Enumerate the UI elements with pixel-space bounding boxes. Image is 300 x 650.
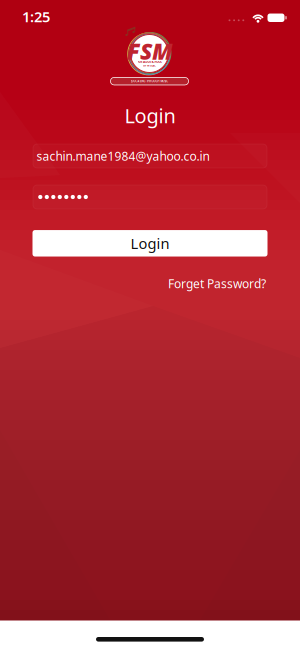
button[interactable]: Email <box>33 144 267 168</box>
staticText: sachin.mane1984@yahoo.co.in <box>36 148 209 164</box>
staticText: Login <box>124 102 175 129</box>
staticText: Forget Password? <box>168 275 266 291</box>
staticText: FSM <box>127 36 173 66</box>
staticText: EDUCATING THROUGH MUSIC <box>130 79 168 83</box>
staticText: OF MUSIC <box>143 64 156 67</box>
staticText: 1:25 <box>22 7 50 26</box>
button[interactable]: Password <box>33 185 267 209</box>
staticText: FURTADOS SCHOOL <box>137 60 161 64</box>
button[interactable]: Login <box>32 230 267 257</box>
button[interactable]: Forget Password? <box>168 275 266 291</box>
staticText: Login <box>130 234 169 253</box>
